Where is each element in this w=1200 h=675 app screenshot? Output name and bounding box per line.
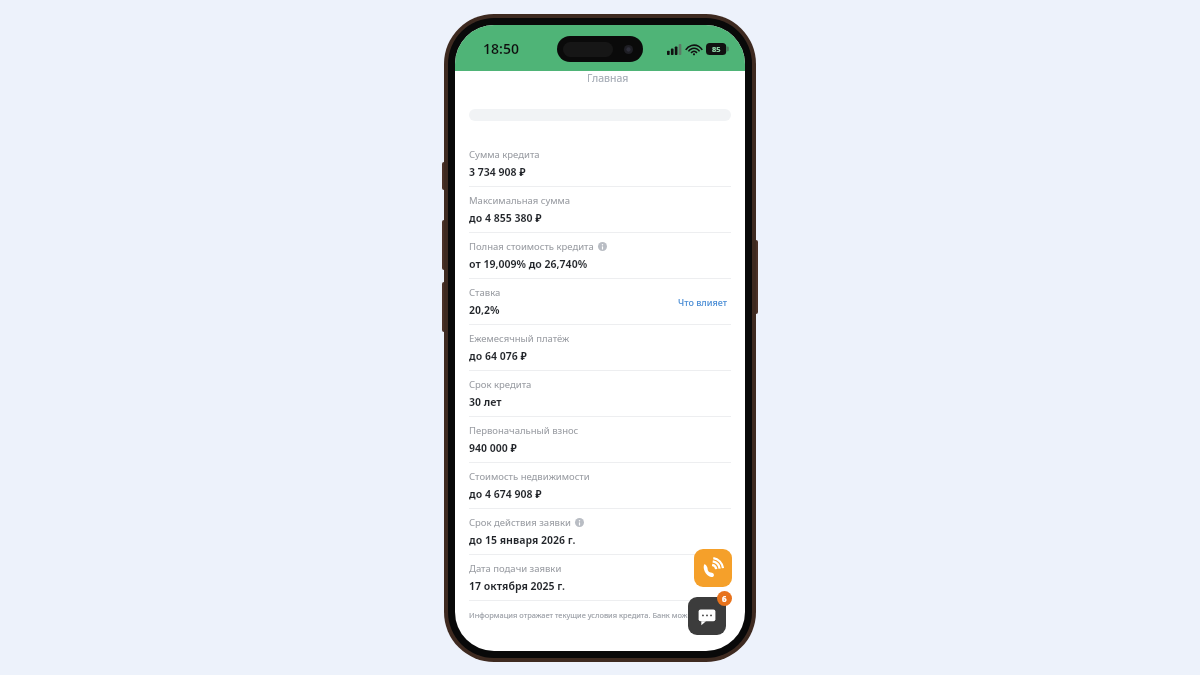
staticText: до 4 855 380 ₽ <box>469 211 542 225</box>
button[interactable]: Главная <box>471 71 745 94</box>
staticText: Что влияет <box>678 296 727 308</box>
staticText: от 19,009% до 26,740% <box>469 257 588 271</box>
staticText: Сумма кредита <box>469 148 540 161</box>
button[interactable]: Максимальная сумма <box>469 187 731 232</box>
other: Информация <box>575 518 584 527</box>
staticText: Максимальная сумма <box>469 194 571 207</box>
staticText: до 4 674 908 ₽ <box>469 487 542 501</box>
staticText: Главная <box>587 71 629 85</box>
staticText: Ставка <box>469 286 501 299</box>
staticText: Ежемесячный платёж <box>469 332 570 345</box>
staticText: 940 000 ₽ <box>469 441 517 455</box>
staticText: Стоимость недвижимости <box>469 470 590 483</box>
staticText: 6 <box>722 593 727 604</box>
button[interactable]: Стоимость недвижимости <box>469 463 731 508</box>
button[interactable]: Срок действия заявки <box>469 509 731 554</box>
staticText: до 64 076 ₽ <box>469 349 527 363</box>
button[interactable]: Дата подачи заявки <box>469 555 731 600</box>
staticText: 18:50 <box>483 39 519 58</box>
other: Информация <box>598 242 607 251</box>
staticText: Срок действия заявки <box>469 516 571 529</box>
staticText: Полная стоимость кредита <box>469 240 594 253</box>
staticText: 30 лет <box>469 395 502 409</box>
staticText: 17 октября 2025 г. <box>469 579 565 593</box>
staticText: Дата подачи заявки <box>469 562 562 575</box>
staticText: 85 <box>712 44 721 54</box>
staticText: Срок кредита <box>469 378 532 391</box>
staticText: Информация отражает текущие условия кред… <box>469 610 695 620</box>
button[interactable]: Позвонить <box>694 549 732 587</box>
button[interactable]: Полная стоимость кредита <box>469 233 731 278</box>
button[interactable]: Ежемесячный платёж <box>469 325 731 370</box>
staticText: 3 734 908 ₽ <box>469 165 526 179</box>
button[interactable]: Первоначальный взнос <box>469 417 731 462</box>
button[interactable]: Чат с поддержкой <box>688 597 726 635</box>
button[interactable]: Что влияет <box>674 292 731 312</box>
button[interactable]: Ставка <box>469 279 731 324</box>
staticText: 20,2% <box>469 303 500 317</box>
button[interactable]: Срок кредита <box>469 371 731 416</box>
button[interactable]: Сумма кредита <box>469 141 731 186</box>
staticText: до 15 января 2026 г. <box>469 533 576 547</box>
staticText: Первоначальный взнос <box>469 424 579 437</box>
